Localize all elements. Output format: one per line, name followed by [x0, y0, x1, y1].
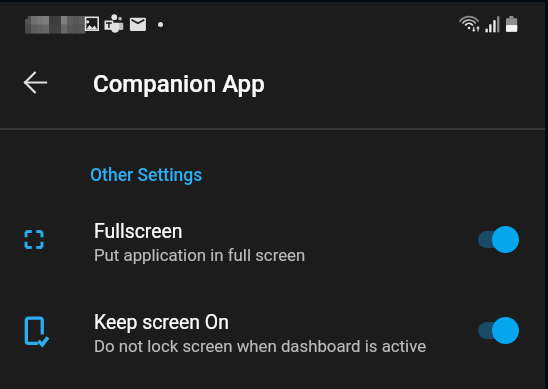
button[interactable]: Fullscreen — [0, 207, 548, 277]
staticText: Companion App — [93, 70, 265, 98]
staticText: Put application in full screen — [94, 245, 306, 265]
staticText: Keep screen On — [94, 311, 229, 334]
staticText: Other Settings — [90, 165, 203, 186]
button[interactable]: Keep screen On — [0, 298, 548, 368]
staticText: Fullscreen — [94, 220, 183, 243]
button[interactable]: Fullscreen, on — [476, 223, 524, 255]
button[interactable]: Navigate up — [13, 60, 57, 104]
button[interactable]: Keep screen On, on — [476, 314, 524, 346]
staticText: Do not lock screen when dashboard is act… — [94, 336, 427, 356]
